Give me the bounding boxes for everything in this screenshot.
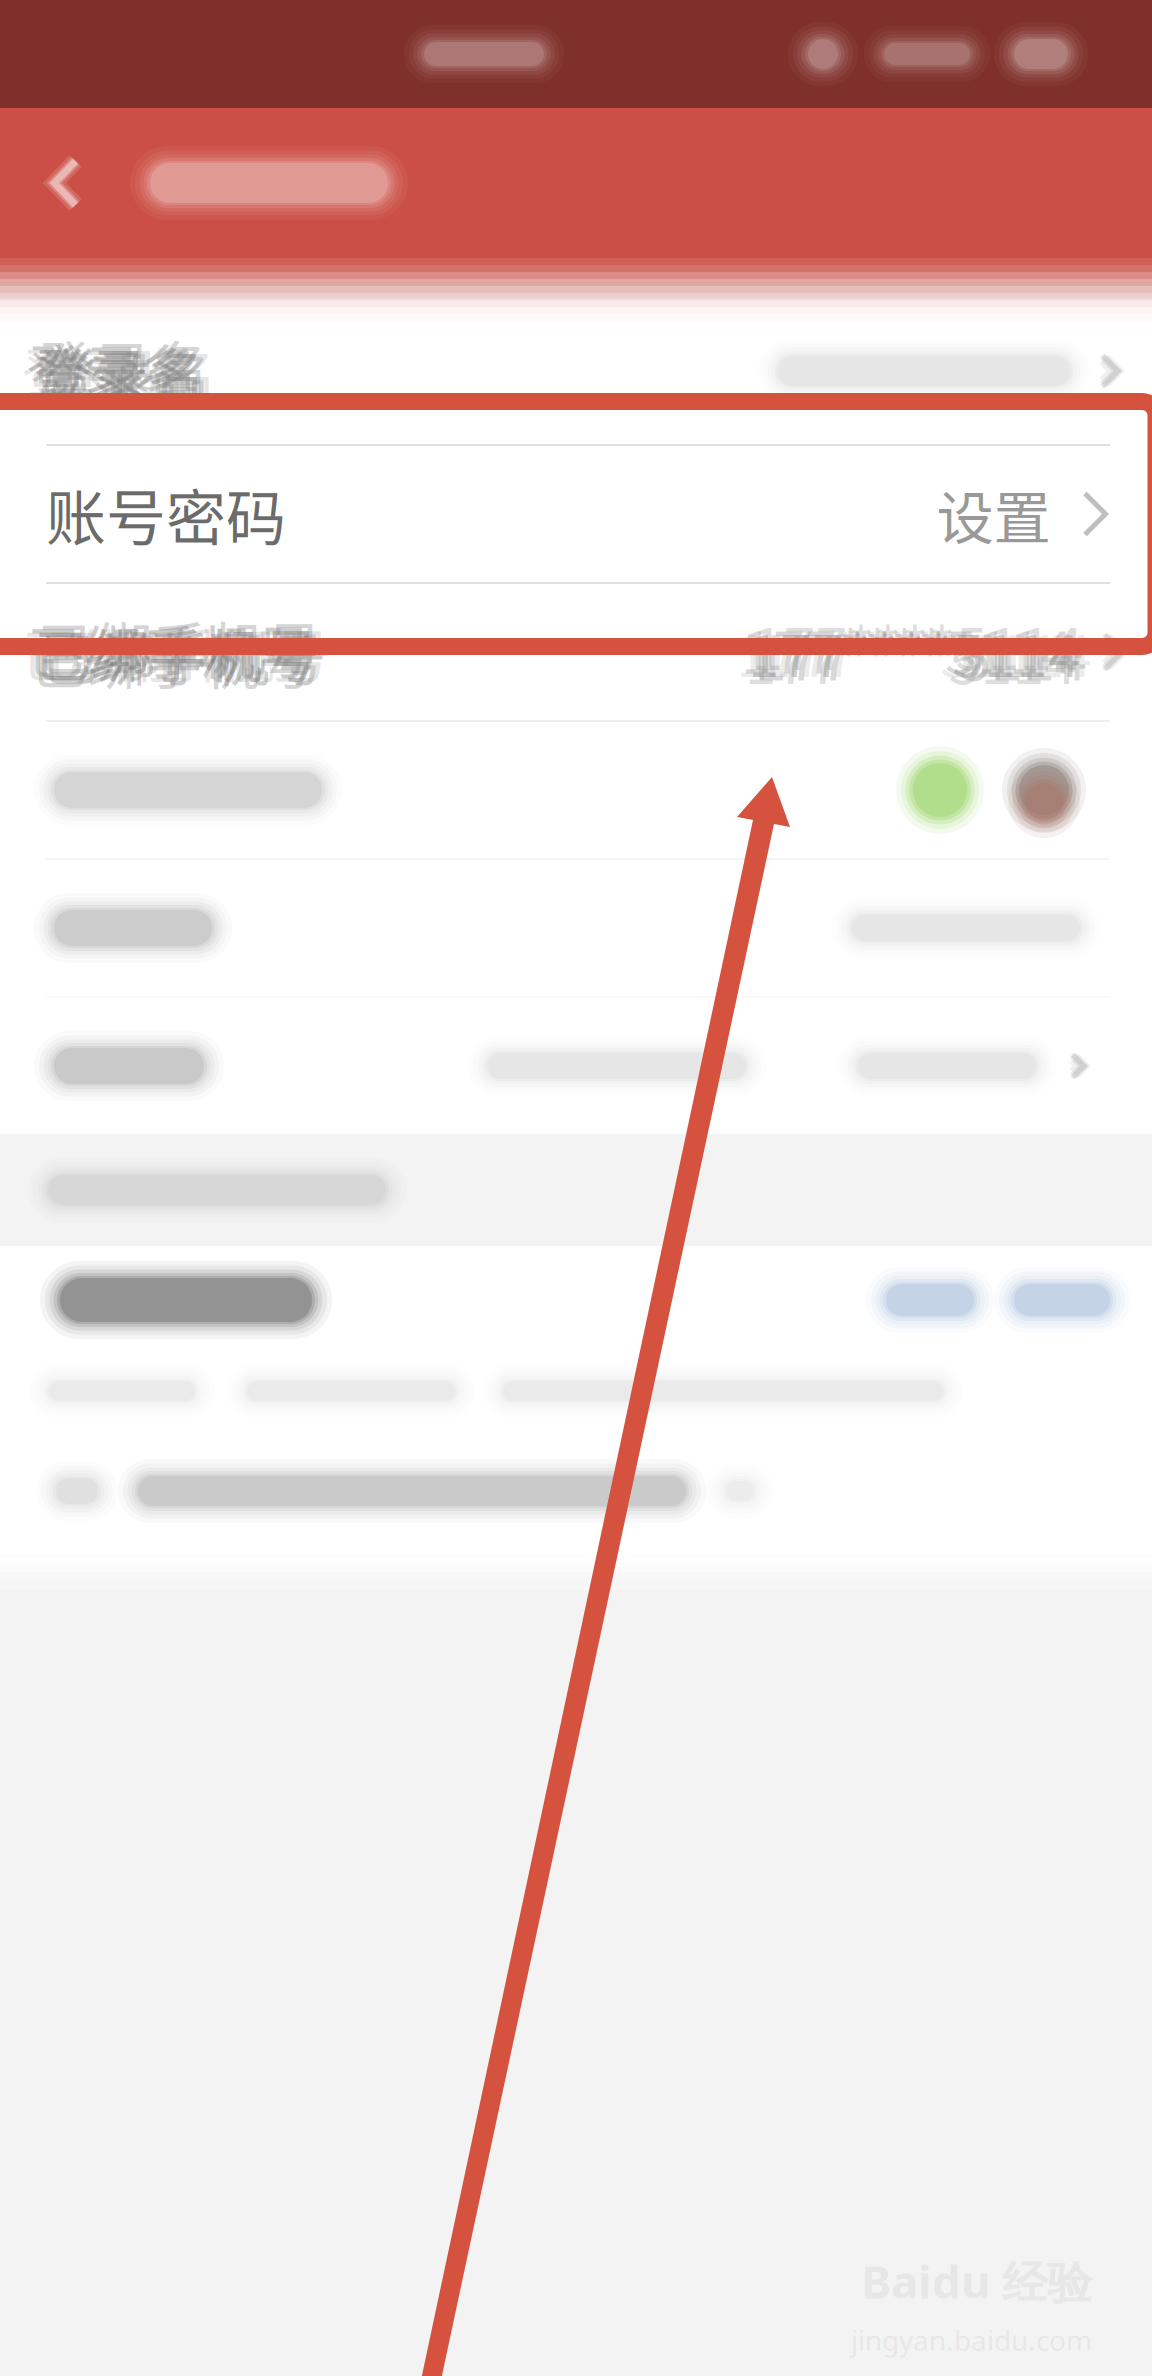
staticText: 已绑手机号 [22,610,307,693]
staticText: 177****5114 [741,607,1073,690]
staticText: 账号密码 [46,471,286,557]
staticText: 登录名 [34,329,205,412]
staticText: 设置 [936,472,1050,555]
staticText: 登录名 [22,329,193,412]
staticText: 登录名 [37,322,208,405]
staticText: 已绑手机号 [30,617,315,700]
staticText: 177****5114 [751,603,1083,686]
staticText: Baidu 经验 [861,2251,1092,2311]
button[interactable]: 账号密码 [0,446,1152,582]
staticText: 177****5114 [760,610,1092,693]
button[interactable] [0,1246,1152,1354]
button[interactable] [0,860,1152,996]
staticText: 177****5114 [748,610,1080,693]
staticText: 登录名 [41,333,212,416]
button[interactable] [0,722,1152,858]
staticText: 已绑手机号 [27,607,312,690]
staticText: 177****5114 [736,610,1068,693]
staticText: 已绑手机号 [37,603,322,686]
button[interactable] [0,998,1152,1134]
staticText: jingyan.baidu.com [851,2321,1092,2359]
button[interactable]: 已绑手机号 [0,584,1152,720]
staticText: 登录名 [30,336,201,419]
staticText: 177****5114 [744,617,1076,700]
button[interactable]: 登录名 [0,298,1152,444]
staticText: 177****5114 [755,614,1087,697]
staticText: 登录名 [46,329,217,412]
staticText: 已绑手机号 [34,610,319,693]
staticText: 已绑手机号 [41,614,326,697]
button[interactable]: Back [0,108,130,258]
staticText: 已绑手机号 [46,610,331,693]
staticText: 登录名 [27,326,198,409]
